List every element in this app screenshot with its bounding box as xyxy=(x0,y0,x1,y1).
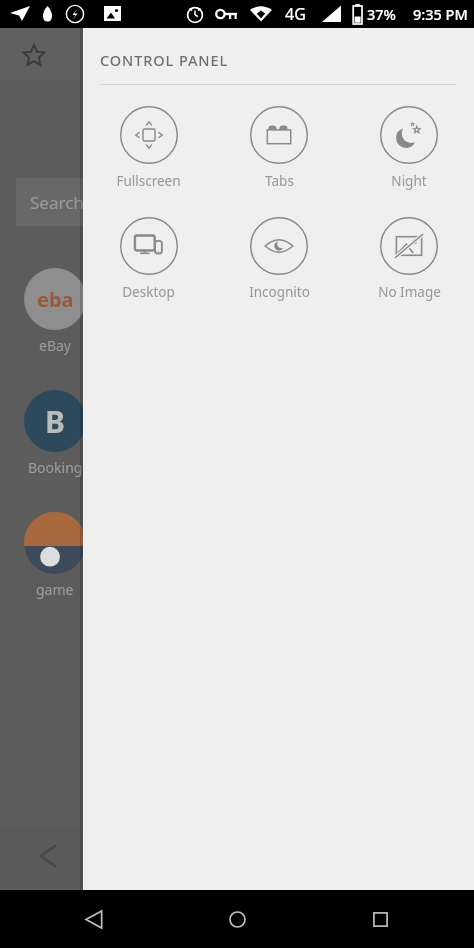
staticText: 37% xyxy=(367,4,396,24)
staticText: Incognito xyxy=(249,283,310,301)
button[interactable]: Home xyxy=(214,896,260,942)
staticText: Night xyxy=(391,172,427,190)
staticText: B xyxy=(45,401,65,442)
button[interactable]: Recent apps xyxy=(357,896,403,942)
staticText: CONTROL PANEL xyxy=(100,50,229,70)
staticText: Fullscreen xyxy=(116,172,181,190)
staticText: eba xyxy=(37,286,74,313)
button[interactable]: Night xyxy=(344,104,474,192)
staticText: 9:35 PM xyxy=(413,4,468,24)
staticText: 4G xyxy=(285,3,306,25)
button[interactable]: Tabs xyxy=(214,104,344,192)
staticText: Search xyxy=(30,191,84,214)
staticText: Desktop xyxy=(122,283,175,301)
staticText: Booking xyxy=(28,458,83,477)
staticText: eBay xyxy=(39,336,71,355)
staticText: Tabs xyxy=(265,172,294,190)
staticText: game xyxy=(36,580,74,599)
staticText: No Image xyxy=(378,283,441,301)
button[interactable]: Fullscreen xyxy=(83,104,214,192)
button[interactable]: Desktop xyxy=(83,215,214,303)
button[interactable]: No Image xyxy=(344,215,474,303)
button[interactable]: Incognito xyxy=(214,215,344,303)
button[interactable]: Back xyxy=(71,896,117,942)
